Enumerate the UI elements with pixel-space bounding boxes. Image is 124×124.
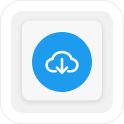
button[interactable]: Download: [32, 32, 92, 92]
